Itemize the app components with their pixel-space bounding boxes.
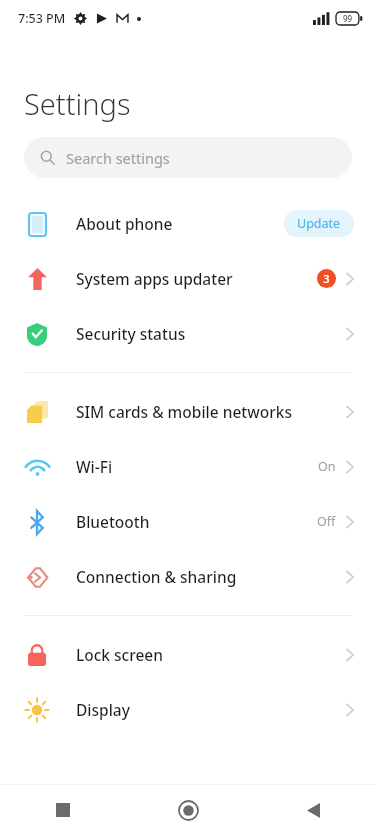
staticText: Security status (76, 323, 186, 344)
button[interactable]: Lock screen (0, 627, 376, 682)
button[interactable]: Wi-Fi (0, 439, 376, 494)
staticText: Settings (24, 84, 131, 123)
staticText: Lock screen (76, 644, 163, 665)
staticText: Update (297, 215, 341, 232)
staticText: Display (76, 699, 130, 720)
staticText: SIM cards & mobile networks (76, 401, 292, 422)
staticText: 99 (343, 13, 353, 24)
button[interactable]: Back (251, 785, 376, 835)
button[interactable]: Search settings (24, 137, 352, 178)
button[interactable]: System apps updater (0, 251, 376, 306)
staticText: Wi-Fi (76, 456, 113, 477)
staticText: Off (317, 513, 336, 530)
button[interactable]: Display (0, 682, 376, 737)
button[interactable]: Bluetooth (0, 494, 376, 549)
button[interactable]: About phone (0, 196, 376, 251)
staticText: System apps updater (76, 268, 233, 289)
staticText: Bluetooth (76, 511, 150, 532)
staticText: 3 (323, 271, 330, 286)
staticText: On (318, 458, 336, 475)
button[interactable]: Recent apps (0, 785, 126, 835)
button[interactable]: Connection & sharing (0, 549, 376, 604)
staticText: Connection & sharing (76, 566, 237, 587)
staticText: Search settings (66, 148, 170, 168)
staticText: About phone (76, 213, 173, 234)
staticText: 7:53 PM (18, 10, 66, 27)
button[interactable]: Security status (0, 306, 376, 361)
button[interactable]: Home (126, 785, 251, 835)
button[interactable]: SIM cards & mobile networks (0, 384, 376, 439)
